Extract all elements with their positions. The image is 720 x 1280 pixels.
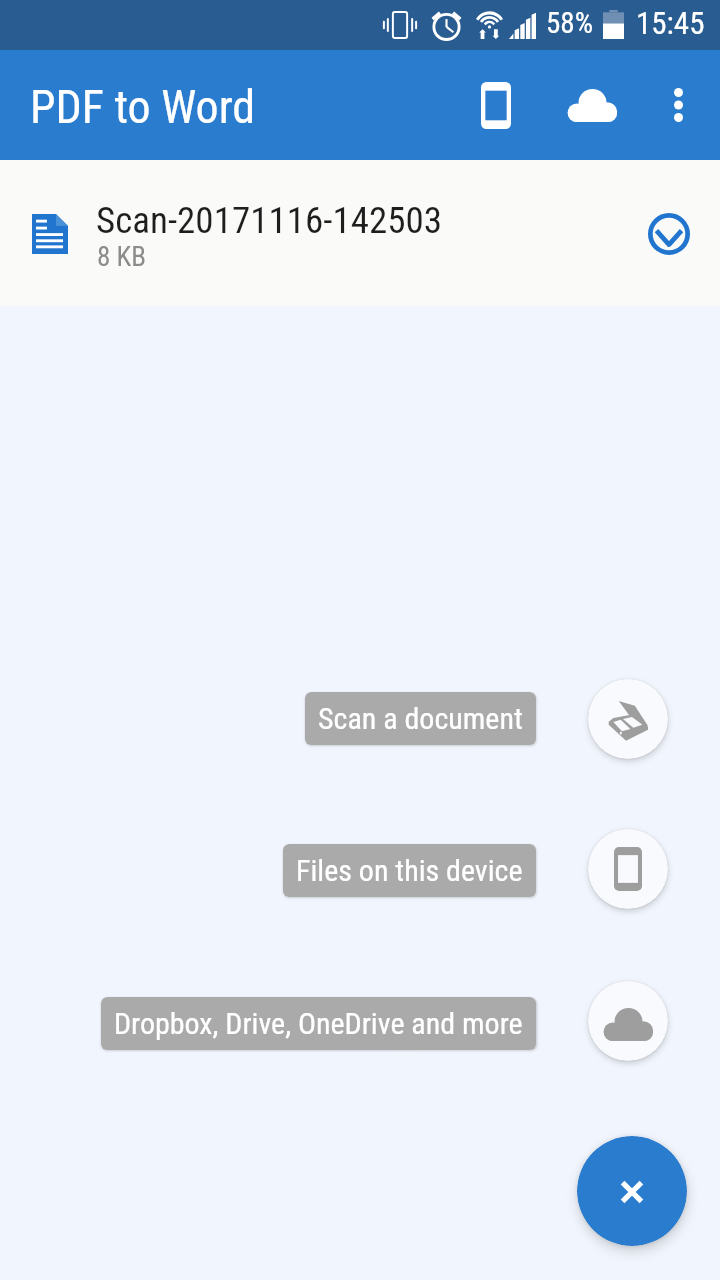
- staticText: PDF to Word: [30, 80, 256, 134]
- staticText: Dropbox, Drive, OneDrive and more: [114, 1006, 523, 1041]
- button[interactable]: Scan a document: [588, 679, 668, 759]
- button[interactable]: Close menu: [577, 1136, 687, 1246]
- button[interactable]: Files on this device: [283, 844, 536, 897]
- button[interactable]: Files on this device: [588, 829, 668, 909]
- button[interactable]: Cloud storage: [552, 50, 632, 160]
- button[interactable]: Expand: [634, 199, 704, 269]
- staticText: Scan-20171116-142503: [96, 199, 442, 242]
- button[interactable]: Dropbox, Drive, OneDrive and more: [588, 981, 668, 1061]
- button[interactable]: Scan a document: [305, 692, 536, 745]
- staticText: Files on this device: [296, 853, 523, 888]
- button[interactable]: More options: [636, 50, 720, 160]
- button[interactable]: Dropbox, Drive, OneDrive and more: [101, 997, 536, 1050]
- staticText: 8 KB: [97, 241, 146, 273]
- button[interactable]: Files on this device: [456, 50, 536, 160]
- staticText: Scan a document: [318, 701, 523, 736]
- staticText: 58%: [546, 6, 593, 40]
- button[interactable]: Scan-20171116-142503: [0, 160, 720, 306]
- staticText: 15:45: [636, 5, 705, 41]
